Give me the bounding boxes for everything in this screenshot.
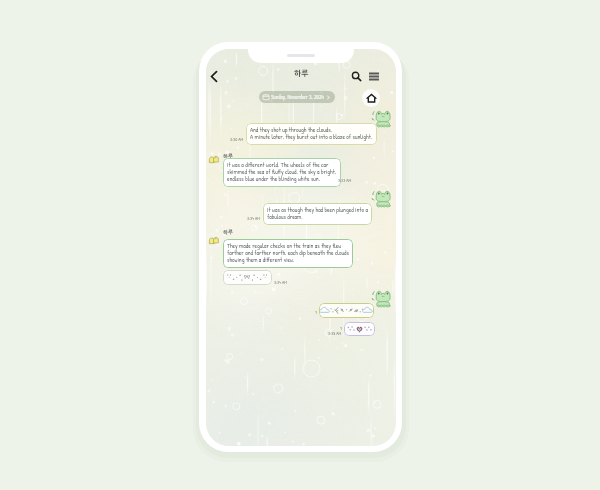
button[interactable]: Sunday, November 3, 2024: [259, 91, 335, 103]
button[interactable]: It was as though they had been plunged i…: [263, 203, 372, 225]
button[interactable]: Search: [348, 68, 364, 84]
button[interactable]: Back: [206, 68, 222, 84]
button[interactable]: Home: [362, 89, 380, 107]
staticText: 하루: [223, 230, 233, 235]
staticText: Sunday, November 3, 2024: [271, 93, 324, 101]
staticText: 하루: [294, 70, 309, 78]
staticText: 3:33 AM: [338, 177, 352, 183]
button[interactable]: Profile picture: [206, 151, 222, 167]
staticText: °·˚ ₊ ‧ ⁺˳ ୨୧ ˳⁺ ‧ ₊ ˚·°: [227, 274, 268, 281]
staticText: 3:35 AM: [328, 330, 342, 336]
button[interactable]: °·˚ ₊ ‧ ⁺˳ ୨୧ ˳⁺ ‧ ₊ ˚·°: [223, 270, 272, 285]
staticText: It was as though they had been plunged i…: [267, 207, 368, 221]
button[interactable]: It was a different world. The wheels of …: [223, 158, 341, 187]
button[interactable]: [319, 303, 374, 318]
staticText: 3:30 AM: [230, 136, 244, 142]
staticText: It was a different world. The wheels of …: [227, 162, 337, 183]
staticText: They made regular checks on the train as…: [227, 243, 349, 264]
staticText: 하루: [223, 154, 233, 159]
staticText: And they shot up through the clouds, A m…: [250, 127, 373, 141]
button[interactable]: Menu: [366, 68, 382, 84]
button[interactable]: Profile picture: [206, 232, 222, 248]
staticText: 1: [315, 309, 317, 315]
button[interactable]: They made regular checks on the train as…: [223, 239, 353, 268]
staticText: 3:34 AM: [274, 279, 287, 285]
staticText: 3:34 AM: [247, 215, 260, 221]
button[interactable]: And they shot up through the clouds, A m…: [246, 123, 377, 145]
staticText: 1: [340, 325, 342, 331]
button[interactable]: [344, 322, 375, 336]
